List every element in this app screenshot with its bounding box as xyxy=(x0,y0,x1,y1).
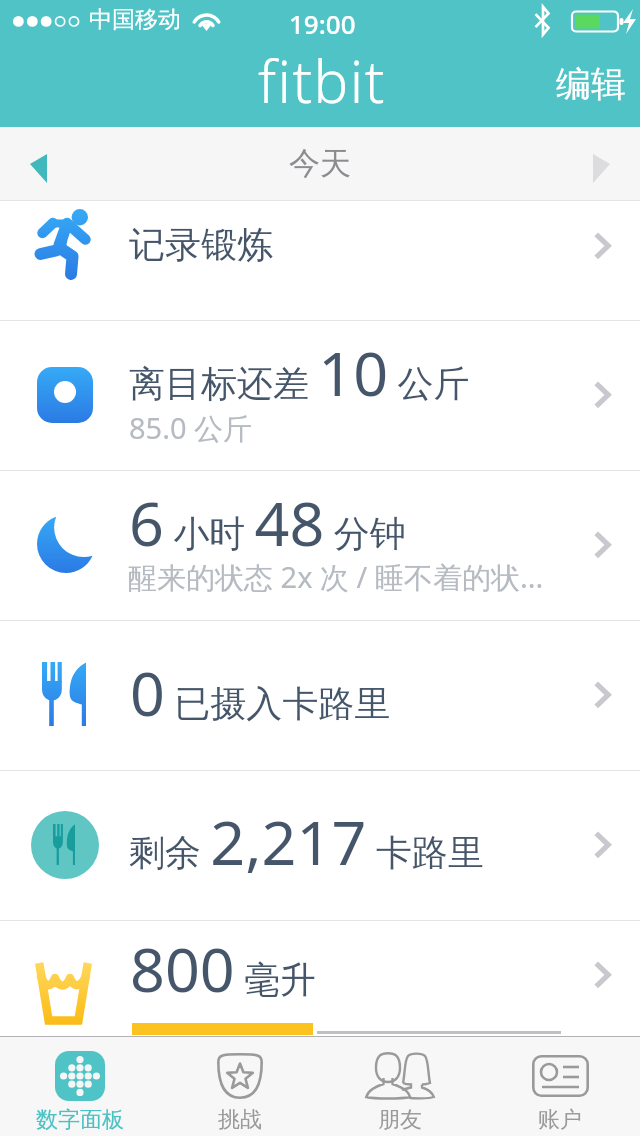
button[interactable]: 6 小时 48 分钟 xyxy=(0,471,640,620)
button[interactable]: Next day xyxy=(572,135,630,193)
button[interactable]: 账户 xyxy=(480,1036,640,1136)
staticText: fitbit xyxy=(258,41,387,120)
staticText: 800 毫升 xyxy=(130,927,317,1010)
staticText: 记录锻炼 xyxy=(129,222,273,267)
staticText: 编辑 xyxy=(556,62,626,106)
staticText: 今天 xyxy=(289,144,351,183)
button[interactable]: 朋友 xyxy=(320,1036,480,1136)
staticText: 6 小时 48 分钟 xyxy=(129,481,406,564)
staticText: 0 已摄入卡路里 xyxy=(130,651,391,734)
staticText: 中国移动 xyxy=(89,5,181,34)
staticText: 离目标还差 10 公斤 xyxy=(129,331,470,414)
button[interactable]: Previous day xyxy=(10,135,68,193)
staticText: 剩余 2,217 卡路里 xyxy=(129,800,484,883)
staticText: 数字面板 xyxy=(0,1106,160,1134)
button[interactable]: 数字面板 xyxy=(0,1036,160,1136)
button[interactable]: 离目标还差 10 公斤 xyxy=(0,321,640,470)
button[interactable]: 记录锻炼 xyxy=(0,201,640,320)
staticText: 朋友 xyxy=(320,1106,480,1134)
staticText: 85.0 公斤 xyxy=(129,408,253,448)
staticText: 账户 xyxy=(480,1106,640,1134)
button[interactable]: 挑战 xyxy=(160,1036,320,1136)
staticText: 19:00 xyxy=(289,6,356,41)
staticText: 挑战 xyxy=(160,1106,320,1134)
button[interactable]: 800 毫升 xyxy=(0,921,640,1036)
button[interactable]: 剩余 2,217 卡路里 xyxy=(0,771,640,920)
button[interactable]: 编辑 xyxy=(540,56,640,112)
staticText: 醒来的状态 2x 次 / 睡不着的状... xyxy=(128,557,544,597)
button[interactable]: 0 已摄入卡路里 xyxy=(0,621,640,770)
